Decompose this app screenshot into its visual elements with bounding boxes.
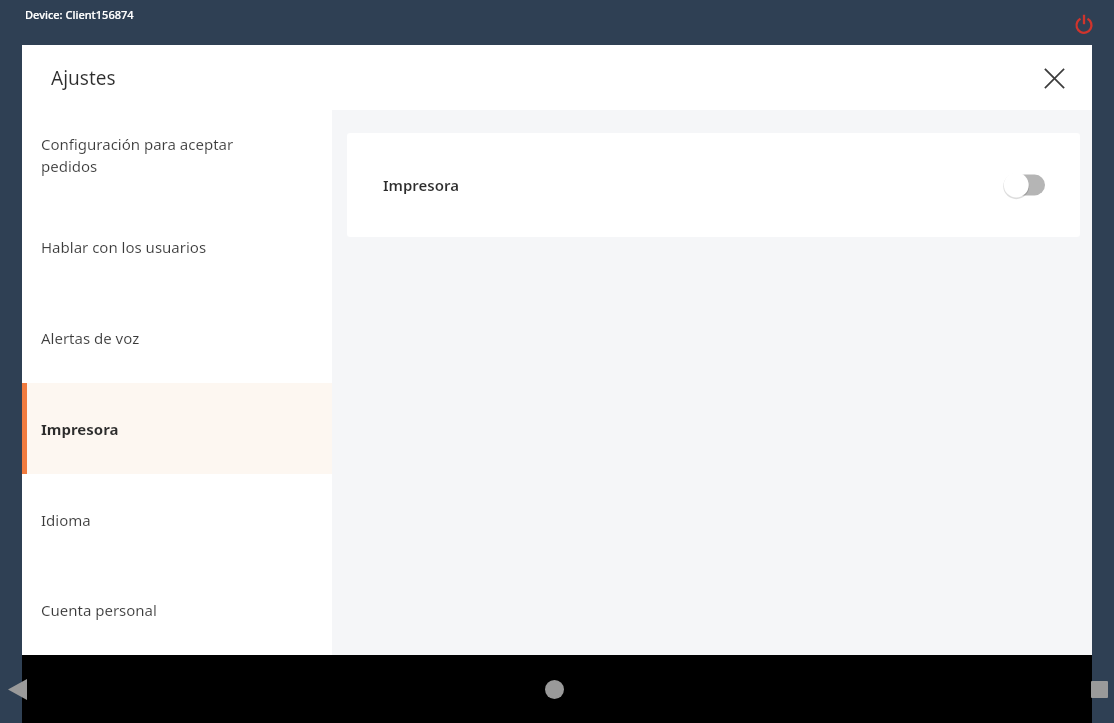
button[interactable]: Impresora <box>22 383 332 474</box>
staticText: Ajustes <box>51 65 116 91</box>
button[interactable]: Cuenta personal <box>22 565 332 655</box>
button[interactable]: Power <box>1066 6 1102 42</box>
button[interactable]: Alertas de voz <box>22 292 332 383</box>
staticText: Configuración para aceptar pedidos <box>41 134 234 177</box>
button[interactable]: Recents <box>735 655 1092 723</box>
button[interactable]: Impresora toggle <box>996 168 1052 202</box>
staticText: Idioma <box>41 510 91 530</box>
staticText: Impresora <box>41 419 119 439</box>
button[interactable]: Impresora <box>347 133 1080 237</box>
staticText: Device: Client156874 <box>25 7 134 22</box>
button[interactable]: Idioma <box>22 474 332 565</box>
button[interactable]: Close <box>1034 58 1074 98</box>
staticText: Alertas de voz <box>41 328 140 348</box>
button[interactable]: Configuración para aceptar pedidos <box>22 110 332 201</box>
staticText: Hablar con los usuarios <box>41 237 207 257</box>
button[interactable]: Hablar con los usuarios <box>22 201 332 292</box>
staticText: Impresora <box>383 175 459 195</box>
button[interactable]: Back <box>22 655 378 723</box>
staticText: Cuenta personal <box>41 600 157 620</box>
button[interactable]: Home <box>378 655 735 723</box>
